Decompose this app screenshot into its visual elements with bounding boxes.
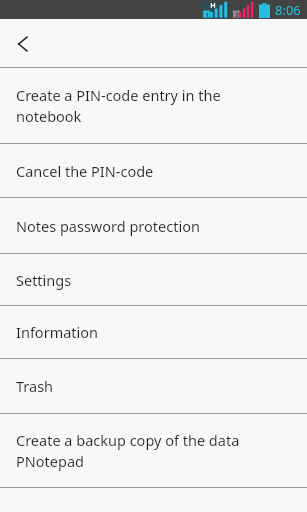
button[interactable]: Settings	[0, 254, 307, 305]
button[interactable]: Create a PIN-code entry in the notebook	[0, 68, 307, 143]
staticText: Create a backup copy of the data PNotepa…	[16, 430, 240, 472]
staticText: Create a PIN-code entry in the notebook	[16, 85, 221, 127]
staticText: Notes password protection	[16, 216, 200, 236]
button[interactable]: Notes password protection	[0, 198, 307, 253]
staticText: 8:06	[275, 1, 301, 19]
button[interactable]: Information	[0, 306, 307, 358]
staticText: Settings	[16, 270, 72, 290]
staticText: Information	[16, 322, 99, 342]
button[interactable]: Trash	[0, 359, 307, 413]
staticText: Cancel the PIN-code	[16, 161, 154, 181]
button[interactable]: Cancel the PIN-code	[0, 144, 307, 197]
button[interactable]: Back	[6, 27, 40, 61]
staticText: Trash	[16, 376, 54, 396]
staticText: 2	[235, 11, 239, 18]
staticText: 1	[205, 11, 209, 18]
button[interactable]: Create a backup copy of the data PNotepa…	[0, 414, 307, 487]
